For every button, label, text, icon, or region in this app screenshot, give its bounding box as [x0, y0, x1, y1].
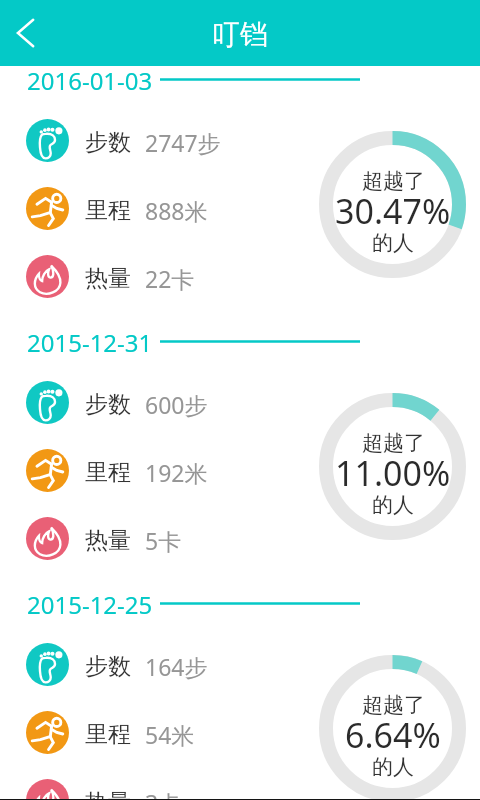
- staticText: 超越了: [362, 168, 425, 194]
- staticText: 步数: [85, 128, 131, 157]
- staticText: 的人: [372, 754, 414, 780]
- staticText: 11.00%: [335, 450, 451, 496]
- button[interactable]: 步数: [26, 368, 480, 436]
- staticText: 热量: [85, 264, 131, 293]
- button[interactable]: 步数: [26, 630, 480, 698]
- button[interactable]: 里程: [26, 436, 480, 504]
- staticText: 的人: [372, 230, 414, 256]
- button[interactable]: 里程: [26, 698, 480, 766]
- staticText: 5卡: [145, 525, 182, 556]
- button[interactable]: 步数: [26, 106, 480, 174]
- staticText: 热量: [85, 526, 131, 555]
- staticText: 192米: [145, 457, 208, 488]
- button[interactable]: 热量: [26, 242, 480, 310]
- staticText: 888米: [145, 195, 208, 226]
- staticText: 2016-01-03: [27, 64, 153, 90]
- button[interactable]: 热量: [26, 504, 480, 572]
- staticText: 步数: [85, 390, 131, 419]
- staticText: 里程: [85, 196, 131, 225]
- staticText: 2015-12-25: [27, 588, 153, 614]
- staticText: 叮铛: [212, 17, 268, 52]
- staticText: 里程: [85, 458, 131, 487]
- staticText: 的人: [372, 492, 414, 518]
- button[interactable]: Back: [0, 0, 54, 66]
- staticText: 30.47%: [335, 188, 451, 234]
- button[interactable]: 热量: [26, 766, 480, 800]
- staticText: 热量: [85, 788, 131, 800]
- staticText: 600步: [145, 389, 208, 420]
- staticText: 6.64%: [345, 712, 441, 758]
- staticText: 2015-12-31: [27, 326, 153, 352]
- staticText: 超越了: [362, 692, 425, 718]
- button[interactable]: 里程: [26, 174, 480, 242]
- staticText: 164步: [145, 651, 208, 682]
- staticText: 超越了: [362, 430, 425, 456]
- staticText: 2747步: [145, 127, 221, 158]
- staticText: 3卡: [145, 787, 182, 800]
- staticText: 22卡: [145, 263, 195, 294]
- staticText: 54米: [145, 719, 195, 750]
- staticText: 里程: [85, 720, 131, 749]
- staticText: 步数: [85, 652, 131, 681]
